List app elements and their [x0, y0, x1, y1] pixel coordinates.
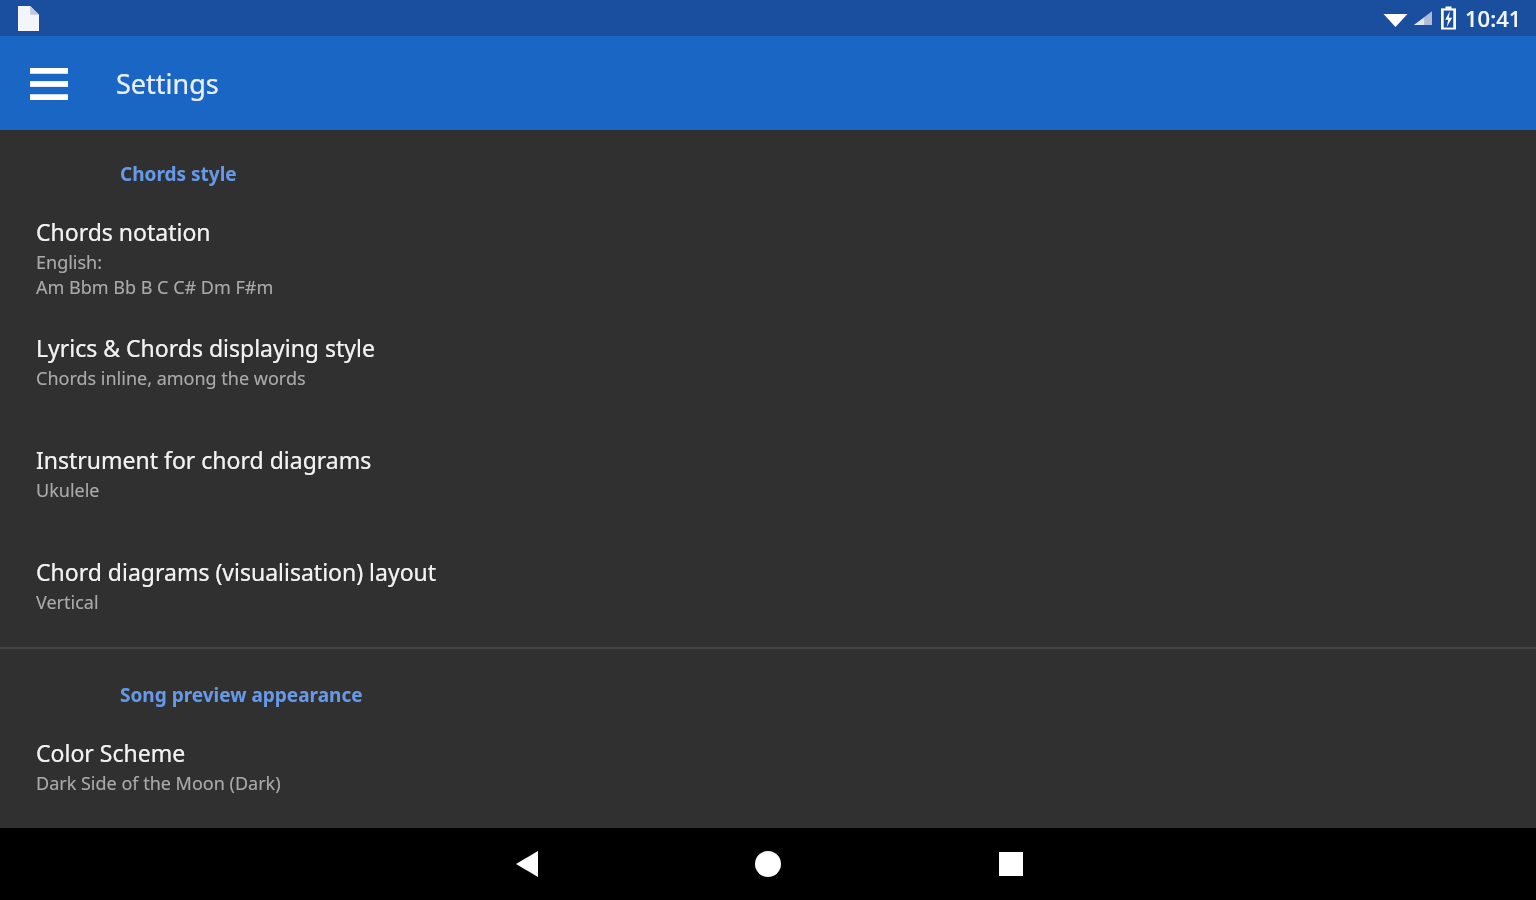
- button[interactable]: Chord diagrams (visualisation) layout: [0, 556, 1536, 615]
- staticText: Settings: [116, 65, 219, 102]
- staticText: 10:41: [1465, 3, 1522, 33]
- staticText: Color Scheme: [36, 737, 186, 768]
- staticText: English:: [36, 250, 103, 275]
- staticText: Chords inline, among the words: [36, 366, 306, 391]
- button[interactable]: Back: [487, 828, 567, 900]
- button[interactable]: Open navigation menu: [11, 46, 86, 121]
- staticText: Lyrics & Chords displaying style: [36, 332, 375, 363]
- button[interactable]: Lyrics & Chords displaying style: [0, 332, 1536, 391]
- staticText: Ukulele: [36, 478, 100, 503]
- staticText: Instrument for chord diagrams: [36, 444, 372, 475]
- staticText: Dark Side of the Moon (Dark): [36, 771, 281, 796]
- button[interactable]: Instrument for chord diagrams: [0, 444, 1536, 503]
- staticText: Chords notation: [36, 216, 211, 247]
- staticText: Chords style: [120, 161, 237, 187]
- staticText: Song preview appearance: [120, 682, 363, 708]
- button[interactable]: Recent apps: [971, 828, 1051, 900]
- button[interactable]: Chords notation: [0, 216, 1536, 300]
- staticText: Am Bbm Bb B C C# Dm F#m: [36, 275, 274, 300]
- staticText: Chord diagrams (visualisation) layout: [36, 556, 437, 587]
- staticText: Vertical: [36, 590, 99, 615]
- button[interactable]: Color Scheme: [0, 737, 1536, 796]
- button[interactable]: Home: [728, 828, 808, 900]
